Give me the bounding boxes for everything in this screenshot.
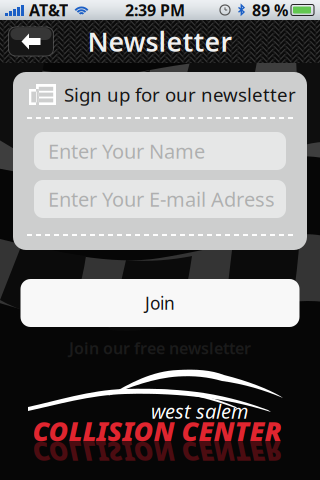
staticText: west salem bbox=[151, 398, 249, 424]
staticText: Enter Your Name bbox=[48, 138, 205, 164]
staticText: AT&T bbox=[29, 0, 68, 21]
button[interactable]: Back bbox=[8, 27, 53, 56]
staticText: Join bbox=[145, 291, 175, 314]
staticText: Newsletter bbox=[87, 24, 232, 59]
staticText: COLLISION CENTER bbox=[32, 434, 281, 470]
staticText: Sign up for our newsletter bbox=[64, 82, 296, 107]
staticText: Join our free newsletter bbox=[69, 337, 251, 359]
staticText: 2:39 PM bbox=[125, 0, 185, 21]
button[interactable]: Join bbox=[20, 279, 299, 327]
staticText: 89 % bbox=[252, 0, 288, 21]
staticText: Enter Your E-mail Adress bbox=[48, 186, 275, 212]
button[interactable]: Enter Your E-mail Adress bbox=[34, 180, 286, 218]
button[interactable]: Enter Your Name bbox=[34, 132, 286, 170]
staticText: COLLISION CENTER bbox=[32, 413, 281, 449]
